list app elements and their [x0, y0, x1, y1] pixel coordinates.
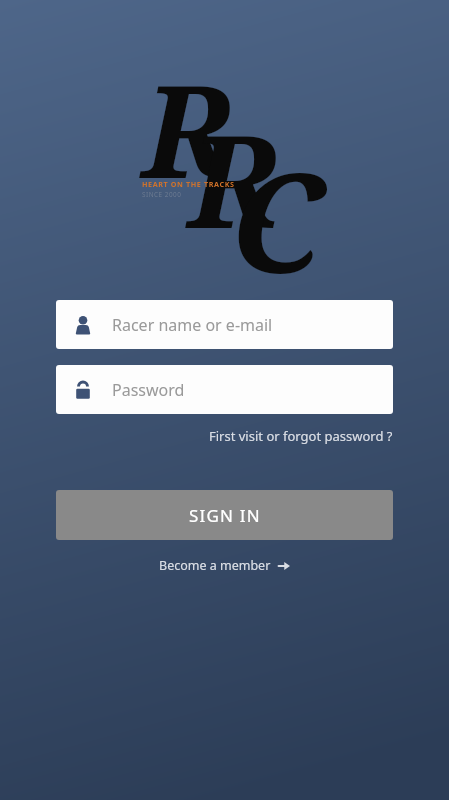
staticText: Become a member	[159, 557, 271, 574]
staticText: Password	[112, 379, 185, 401]
staticText: SIGN IN	[189, 504, 261, 527]
button[interactable]: Racer name or e-mail	[56, 300, 393, 349]
staticText: R	[188, 91, 279, 265]
staticText: SINCE 2000	[142, 190, 182, 199]
staticText: R	[142, 41, 233, 215]
staticText: First visit or forgot password ?	[209, 427, 393, 445]
button[interactable]: Password	[56, 365, 393, 414]
button[interactable]: Become a member	[153, 554, 296, 577]
staticText: Racer name or e-mail	[112, 314, 273, 336]
button[interactable]: First visit or forgot password ?	[56, 427, 393, 445]
staticText: HEART ON THE TRACKS	[142, 179, 235, 189]
button[interactable]: SIGN IN	[56, 490, 393, 540]
staticText: C	[230, 125, 323, 313]
